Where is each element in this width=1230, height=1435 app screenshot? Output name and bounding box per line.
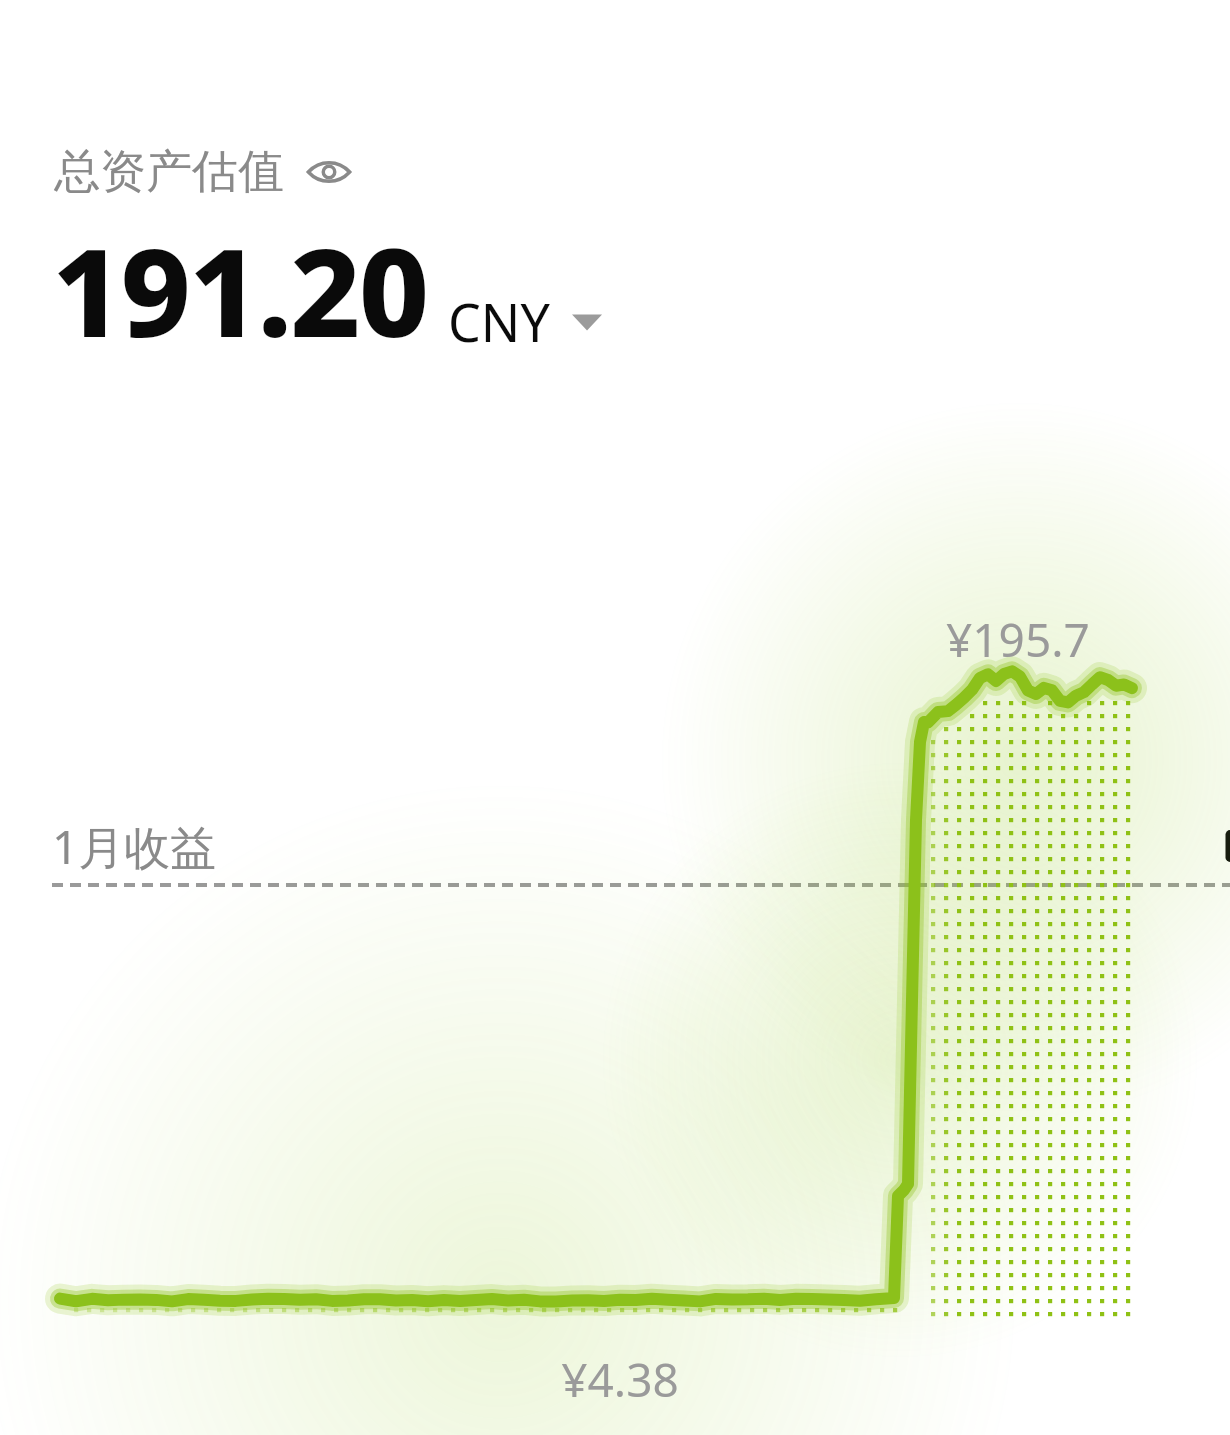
staticText: ¥195.7 <box>946 608 1090 671</box>
staticText: ¥4.38 <box>540 1348 700 1411</box>
button[interactable]: CNY <box>448 286 602 357</box>
staticText: CNY <box>448 286 550 357</box>
staticText: 191.20 <box>52 207 428 373</box>
staticText: 1月收益 <box>52 815 217 878</box>
button[interactable]: Toggle balance visibility <box>306 149 352 195</box>
staticText: 总资产估值 <box>54 143 284 201</box>
button[interactable]: 1月收益 <box>52 391 1230 1301</box>
button[interactable]: 总资产估值 <box>54 143 352 201</box>
